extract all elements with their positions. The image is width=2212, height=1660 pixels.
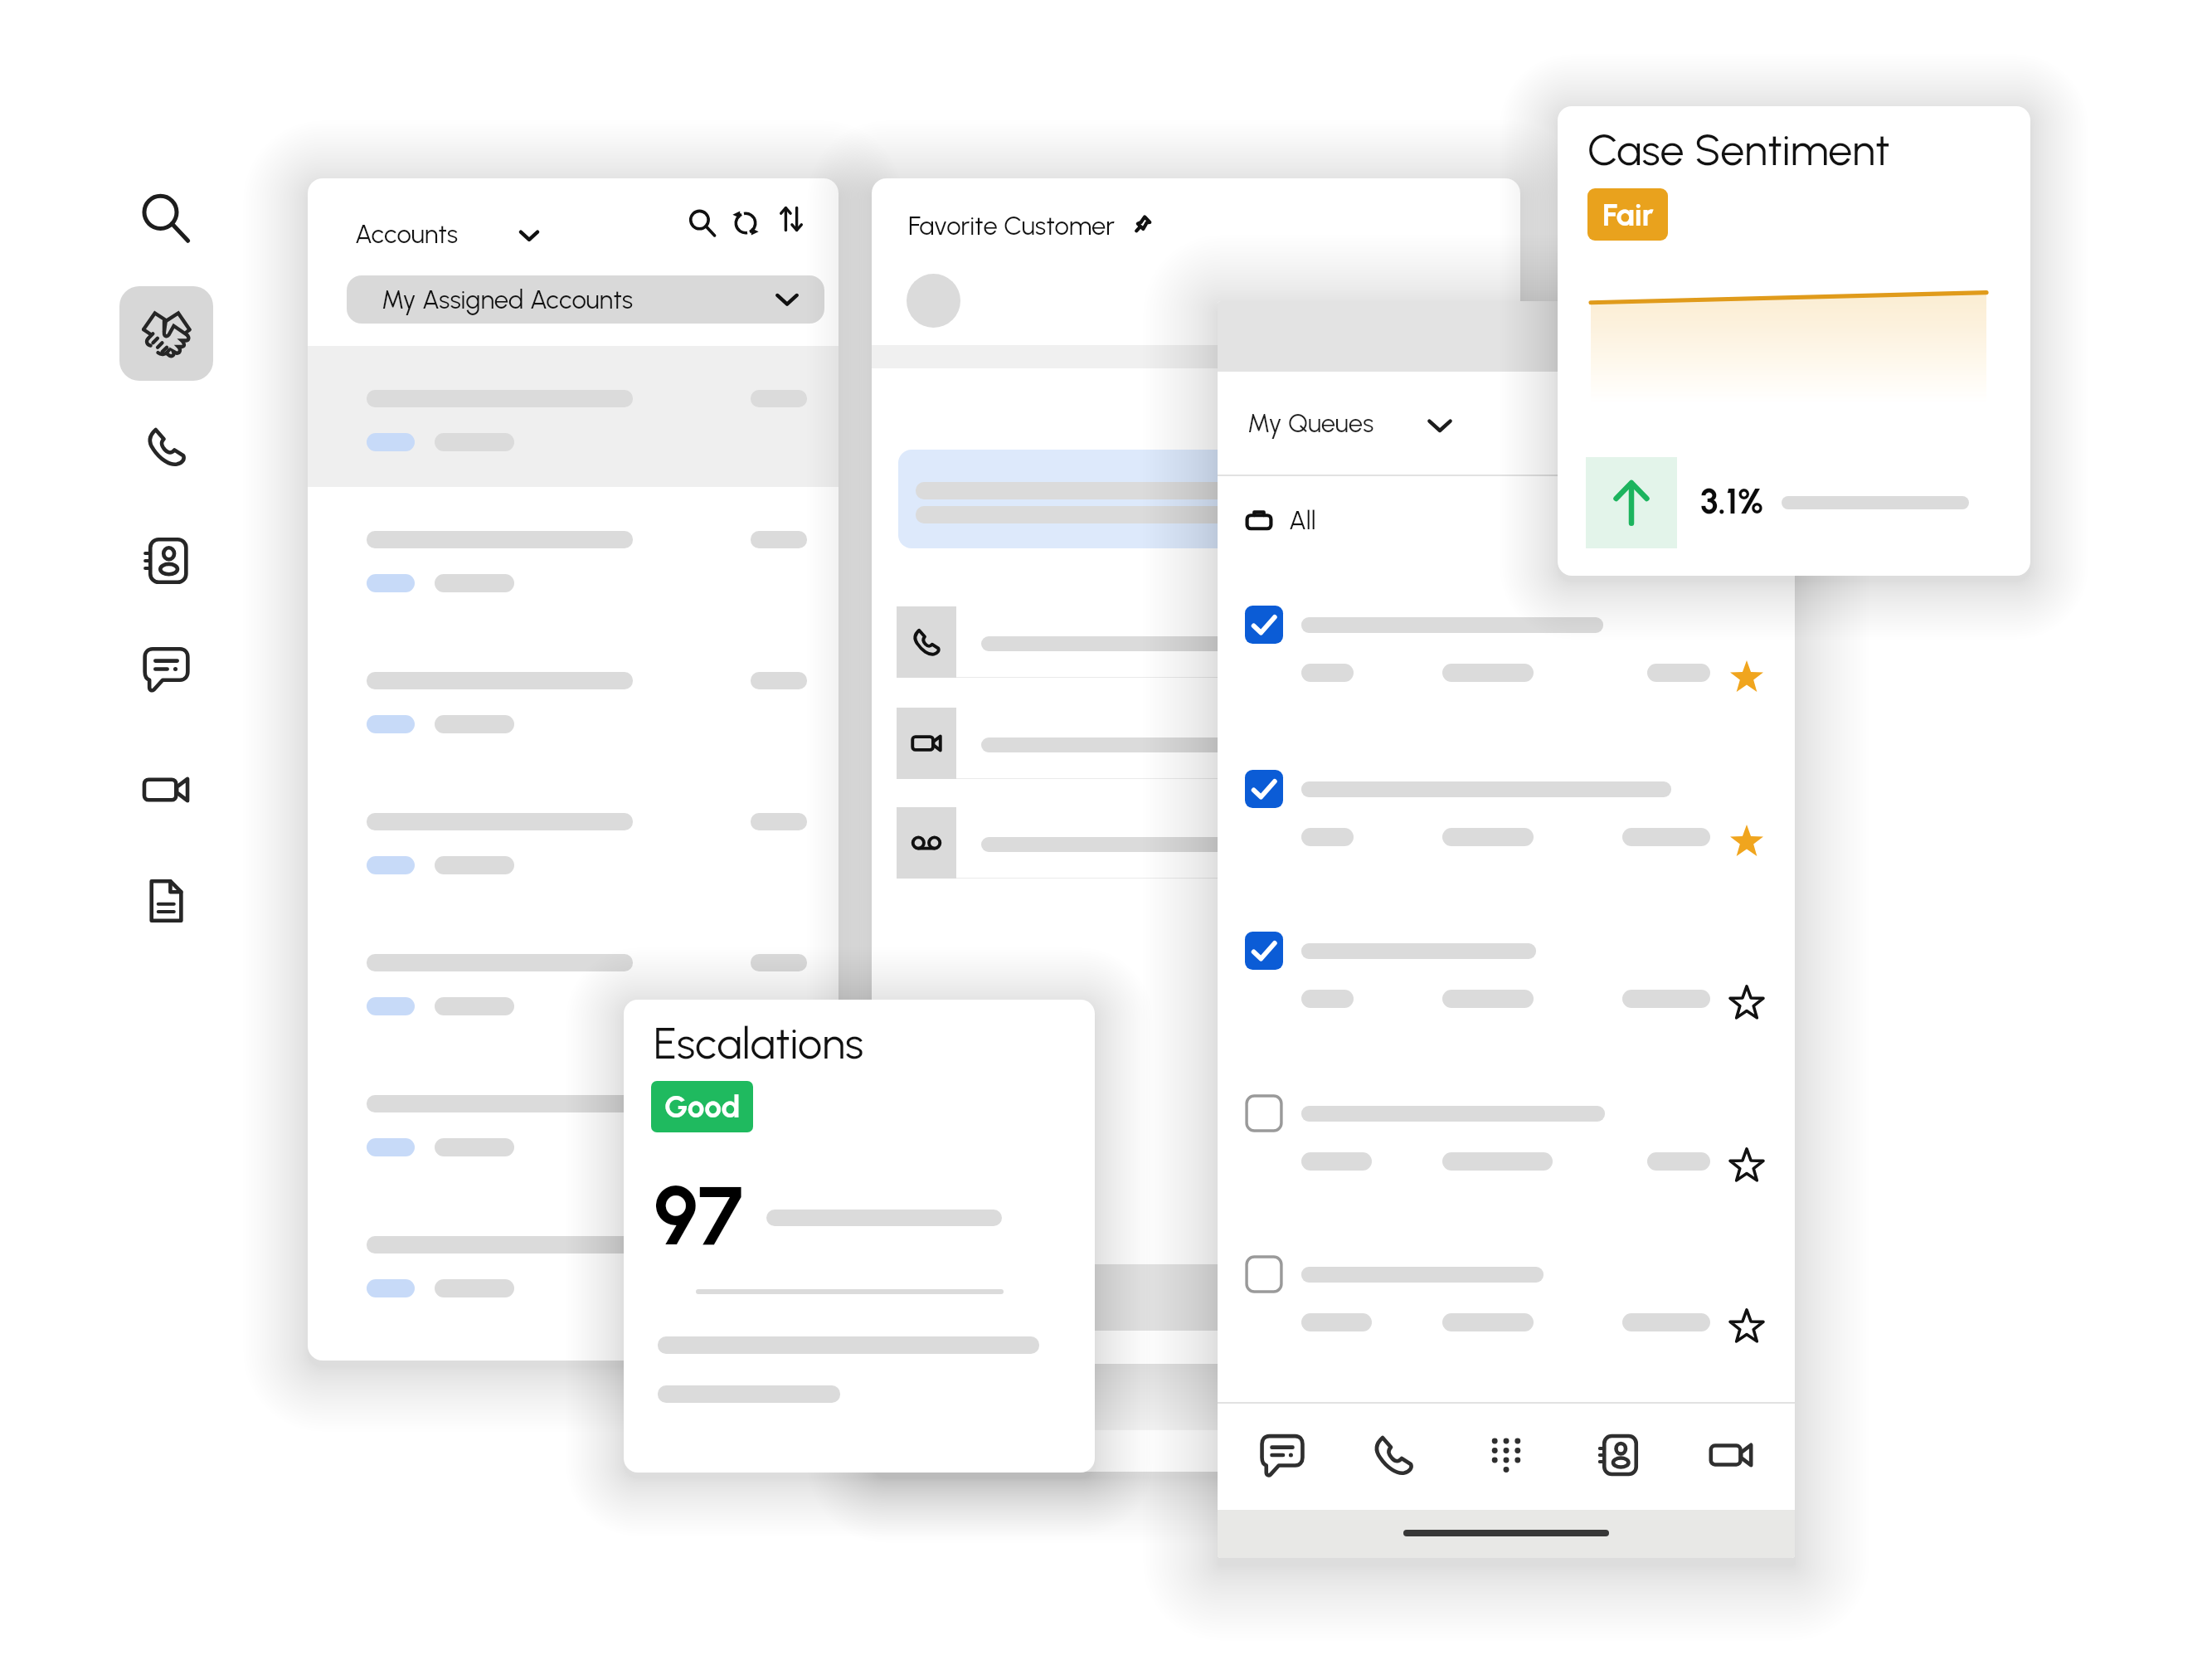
button[interactable]: Contacts <box>1582 1419 1655 1492</box>
button[interactable]: Video call <box>897 708 956 779</box>
staticText: Escalations <box>654 1018 864 1069</box>
button[interactable] <box>898 450 1479 548</box>
button[interactable]: Change queue <box>1427 413 1452 438</box>
button[interactable] <box>308 1333 839 1361</box>
button[interactable]: Refresh <box>732 209 760 237</box>
button[interactable] <box>1218 1082 1795 1231</box>
button[interactable]: Favorite Customer <box>908 200 1116 251</box>
button[interactable]: Search <box>129 181 203 256</box>
button[interactable] <box>308 487 839 628</box>
button[interactable]: Accounts <box>119 286 213 381</box>
button[interactable] <box>308 346 839 487</box>
staticText: Good <box>664 1088 741 1125</box>
button[interactable]: Calls <box>129 409 203 484</box>
button[interactable]: All <box>1246 480 1495 560</box>
button[interactable]: Video <box>1694 1419 1767 1492</box>
button[interactable]: Pin <box>1133 213 1155 235</box>
staticText: My Assigned Accounts <box>382 285 634 315</box>
button[interactable]: Messages <box>1246 1419 1319 1492</box>
button[interactable] <box>308 1051 839 1192</box>
button[interactable] <box>1218 757 1795 907</box>
staticText: All <box>1289 505 1316 536</box>
button[interactable] <box>308 769 839 910</box>
button[interactable]: My Assigned Accounts <box>347 275 824 324</box>
button[interactable] <box>308 1192 839 1333</box>
button[interactable]: Search accounts <box>688 209 717 237</box>
staticText: My Queues <box>1247 408 1374 439</box>
button[interactable] <box>1218 593 1795 742</box>
button[interactable]: Dialpad <box>1470 1419 1543 1492</box>
staticText: Fair <box>1602 197 1654 233</box>
button[interactable] <box>308 910 839 1051</box>
button[interactable]: My Queues <box>1247 397 1496 449</box>
button[interactable]: Voicemail <box>897 807 956 879</box>
button[interactable]: Messages <box>129 631 203 706</box>
button[interactable]: Change list <box>519 226 539 246</box>
button[interactable]: Call <box>897 606 956 678</box>
staticText: Favorite Customer <box>908 211 1116 241</box>
button[interactable]: Video <box>129 752 203 827</box>
button[interactable]: Contacts <box>129 523 203 598</box>
button[interactable]: Call <box>1357 1419 1430 1492</box>
button[interactable]: Sort <box>779 207 804 231</box>
button[interactable] <box>1218 1243 1795 1392</box>
staticText: Accounts <box>355 219 459 250</box>
button[interactable] <box>1218 919 1795 1069</box>
button[interactable]: Accounts <box>355 208 504 260</box>
staticText: Case Sentiment <box>1587 124 1890 176</box>
staticText: 97 <box>654 1167 743 1265</box>
button[interactable] <box>308 628 839 769</box>
button[interactable]: Documents <box>129 864 203 938</box>
staticText: 3.1% <box>1700 480 1764 522</box>
